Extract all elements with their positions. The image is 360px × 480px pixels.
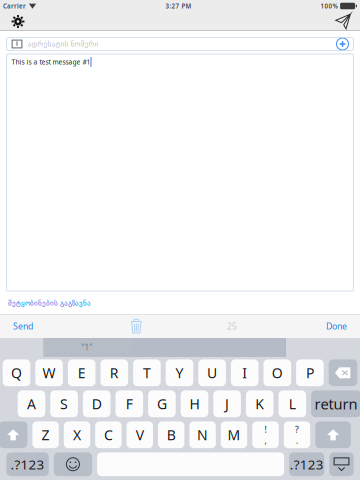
staticText: .?123 <box>290 455 324 473</box>
staticText: R <box>110 363 119 382</box>
staticText: .?123 <box>11 455 45 473</box>
button[interactable]: Settings <box>0 12 36 31</box>
staticText: N <box>197 425 208 444</box>
button[interactable]: Add recipient <box>336 38 348 50</box>
button[interactable]: S <box>50 390 78 417</box>
button[interactable]: V <box>127 421 153 448</box>
button[interactable]: ? <box>284 421 310 448</box>
button[interactable]: O <box>263 359 291 386</box>
staticText: Carrier <box>3 2 26 10</box>
button[interactable]: Hide keyboard <box>329 452 354 476</box>
staticText: 100% <box>321 2 338 10</box>
button[interactable]: R <box>100 359 128 386</box>
staticText: E <box>78 363 86 382</box>
button[interactable]: Send message <box>326 12 360 31</box>
staticText: Y <box>175 363 183 382</box>
button[interactable]: .?123 <box>289 452 324 476</box>
button[interactable]: Emoji <box>54 452 92 476</box>
button[interactable]: Y <box>166 359 193 386</box>
staticText: I <box>242 363 247 382</box>
staticText: return <box>315 394 358 414</box>
staticText: B <box>167 425 176 444</box>
staticText: L <box>289 394 296 413</box>
staticText: G <box>157 394 167 413</box>
staticText: შეტყობინების გაგზავნა <box>8 299 91 307</box>
button[interactable]: T <box>133 359 161 386</box>
button[interactable] <box>97 452 284 476</box>
button[interactable]: Send <box>0 314 46 337</box>
staticText: O <box>272 363 283 382</box>
staticText: T <box>143 363 151 382</box>
button[interactable]: I <box>231 359 258 386</box>
staticText: ! <box>264 423 266 435</box>
button[interactable]: შეტყობინების გაგზავნა <box>0 292 99 313</box>
staticText: This is a test message #1 <box>11 57 90 67</box>
button[interactable]: G <box>148 390 176 417</box>
staticText: K <box>255 394 264 413</box>
button[interactable]: J <box>213 390 241 417</box>
button[interactable]: Q <box>3 359 30 386</box>
button[interactable]: E <box>68 359 95 386</box>
button[interactable]: M <box>221 421 247 448</box>
button[interactable]: Delete <box>122 318 150 333</box>
staticText: J <box>225 394 229 413</box>
button[interactable]: Delete <box>329 359 357 386</box>
staticText: Send <box>13 320 33 332</box>
staticText: S <box>60 394 68 413</box>
button[interactable]: Done <box>313 314 360 337</box>
staticText: ? <box>295 423 299 435</box>
staticText: 3:27 PM <box>166 2 192 10</box>
button[interactable]: C <box>95 421 122 448</box>
staticText: F <box>126 394 133 413</box>
staticText: D <box>92 394 102 413</box>
button[interactable]: ! <box>252 421 279 448</box>
staticText: C <box>104 425 113 444</box>
button[interactable]: H <box>181 390 208 417</box>
staticText: , <box>264 435 266 446</box>
staticText: U <box>207 363 217 382</box>
button[interactable]: P <box>296 359 324 386</box>
staticText: H <box>189 394 199 413</box>
staticText: Done <box>326 320 347 332</box>
button[interactable]: X <box>64 421 90 448</box>
button[interactable]: “1” <box>44 338 130 357</box>
button[interactable]: return <box>311 390 360 417</box>
staticText: Z <box>42 425 50 444</box>
button[interactable]: .?123 <box>6 452 49 476</box>
staticText: ადრესატის ნომერი <box>27 40 98 48</box>
button[interactable]: Shift <box>0 421 27 448</box>
button[interactable]: W <box>35 359 63 386</box>
staticText: A <box>27 394 36 413</box>
button[interactable]: K <box>246 390 273 417</box>
staticText: . <box>296 435 298 446</box>
staticText: P <box>306 363 314 382</box>
staticText: X <box>73 425 81 444</box>
button[interactable]: N <box>189 421 216 448</box>
staticText: M <box>227 425 240 444</box>
button[interactable]: B <box>158 421 184 448</box>
button[interactable]: Z <box>32 421 59 448</box>
staticText: V <box>136 425 144 444</box>
button[interactable]: F <box>115 390 143 417</box>
button[interactable]: D <box>83 390 110 417</box>
button[interactable]: L <box>278 390 306 417</box>
staticText: Q <box>11 363 22 382</box>
button[interactable]: Shift <box>315 421 351 448</box>
button[interactable]: A <box>18 390 45 417</box>
button[interactable]: U <box>198 359 226 386</box>
staticText: 25 <box>227 320 237 332</box>
staticText: W <box>43 363 56 382</box>
staticText: “1” <box>81 342 92 353</box>
